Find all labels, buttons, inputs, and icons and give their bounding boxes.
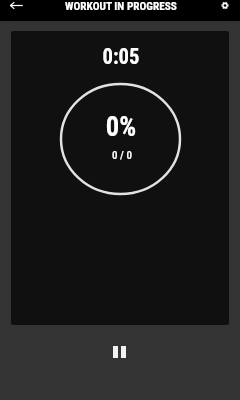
- staticText: WORKOUT IN PROGRESS: [1, 0, 240, 13]
- staticText: 0:05: [18, 44, 223, 70]
- button[interactable]: Settings: [214, 0, 236, 16]
- staticText: 0%: [17, 110, 225, 143]
- button[interactable]: Pause: [107, 340, 131, 364]
- button[interactable]: Back: [5, 0, 28, 16]
- staticText: 0 / 0: [13, 149, 229, 162]
